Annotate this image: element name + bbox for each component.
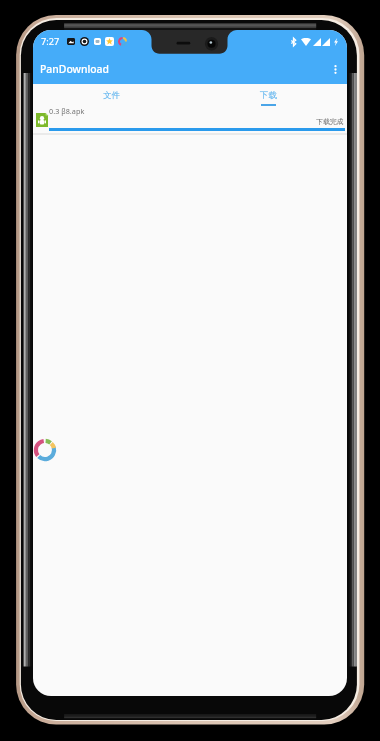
button[interactable]: PanDownload [33,53,347,84]
staticText: 下载 [260,90,277,101]
staticText: PanDownload [40,62,109,76]
staticText: 0.3 β8.apk [49,106,85,116]
staticText: 7:27 [41,35,60,48]
button[interactable]: 0.3 β8.apk [33,106,347,133]
staticText: 下载完成 [316,117,344,126]
button[interactable]: 文件 [33,84,190,106]
button[interactable]: 下载 [190,84,347,106]
button[interactable]: More options [326,60,344,78]
staticText: 文件 [103,90,120,101]
